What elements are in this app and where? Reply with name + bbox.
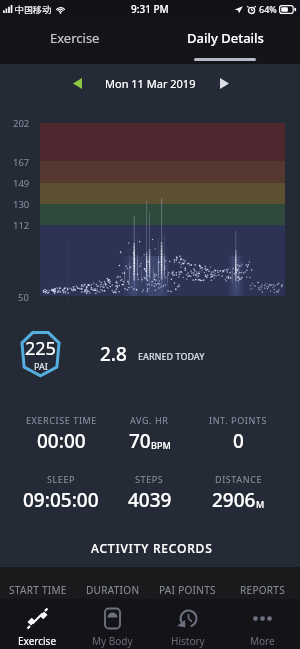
button[interactable]: My Body <box>75 599 150 649</box>
button[interactable]: Next day <box>209 70 239 96</box>
staticText: Exercise <box>50 29 100 47</box>
staticText: 70 <box>129 428 151 454</box>
staticText: 149 <box>13 177 30 190</box>
staticText: History <box>171 634 205 648</box>
staticText: 09:05:00 <box>23 487 99 513</box>
staticText: DISTANCE <box>215 473 263 485</box>
staticText: 4039 <box>128 487 172 513</box>
button[interactable]: More <box>225 599 300 649</box>
staticText: Mon 11 Mar 2019 <box>105 76 196 91</box>
staticText: 167 <box>13 156 30 169</box>
staticText: Daily Details <box>187 29 264 47</box>
staticText: PAI <box>34 360 48 372</box>
staticText: 130 <box>13 198 30 211</box>
staticText: SLEEP <box>47 473 76 485</box>
staticText: EXERCISE TIME <box>26 414 97 426</box>
button[interactable]: Exercise <box>0 18 150 64</box>
staticText: REPORTS <box>240 583 286 597</box>
staticText: START TIME <box>9 583 67 597</box>
staticText: 0 <box>233 428 244 454</box>
staticText: 00:00 <box>37 428 86 454</box>
staticText: M <box>256 498 265 510</box>
button[interactable]: Previous day <box>62 70 92 96</box>
button[interactable]: START TIME <box>0 567 75 599</box>
staticText: 64% <box>259 3 277 15</box>
staticText: 2.8 <box>100 341 127 367</box>
staticText: ACTIVITY RECORDS <box>91 540 213 556</box>
button[interactable]: History <box>150 599 225 649</box>
button[interactable]: Daily Details <box>150 18 300 64</box>
staticText: BPM <box>151 439 171 451</box>
staticText: INT. POINTS <box>209 414 268 426</box>
staticText: 225 <box>25 336 56 361</box>
staticText: Exercise <box>18 634 57 648</box>
staticText: 50 <box>18 291 29 304</box>
button[interactable]: PAI POINTS <box>150 567 225 599</box>
button[interactable]: 225 <box>21 330 60 377</box>
staticText: 202 <box>13 117 30 130</box>
button[interactable]: REPORTS <box>225 567 300 599</box>
staticText: 中国移动 <box>15 4 51 15</box>
staticText: AVG. HR <box>130 414 169 426</box>
staticText: 112 <box>13 219 30 232</box>
staticText: EARNED TODAY <box>138 350 205 362</box>
button[interactable]: ACTIVITY RECORDS <box>0 532 300 567</box>
staticText: PAI POINTS <box>159 583 216 597</box>
staticText: 9:31 PM <box>131 2 169 16</box>
staticText: 2906 <box>212 487 256 513</box>
staticText: STEPS <box>135 473 164 485</box>
staticText: My Body <box>92 634 133 648</box>
staticText: DURATION <box>86 583 140 597</box>
staticText: More <box>250 634 275 648</box>
button[interactable]: Exercise <box>0 599 75 649</box>
button[interactable]: DURATION <box>75 567 150 599</box>
